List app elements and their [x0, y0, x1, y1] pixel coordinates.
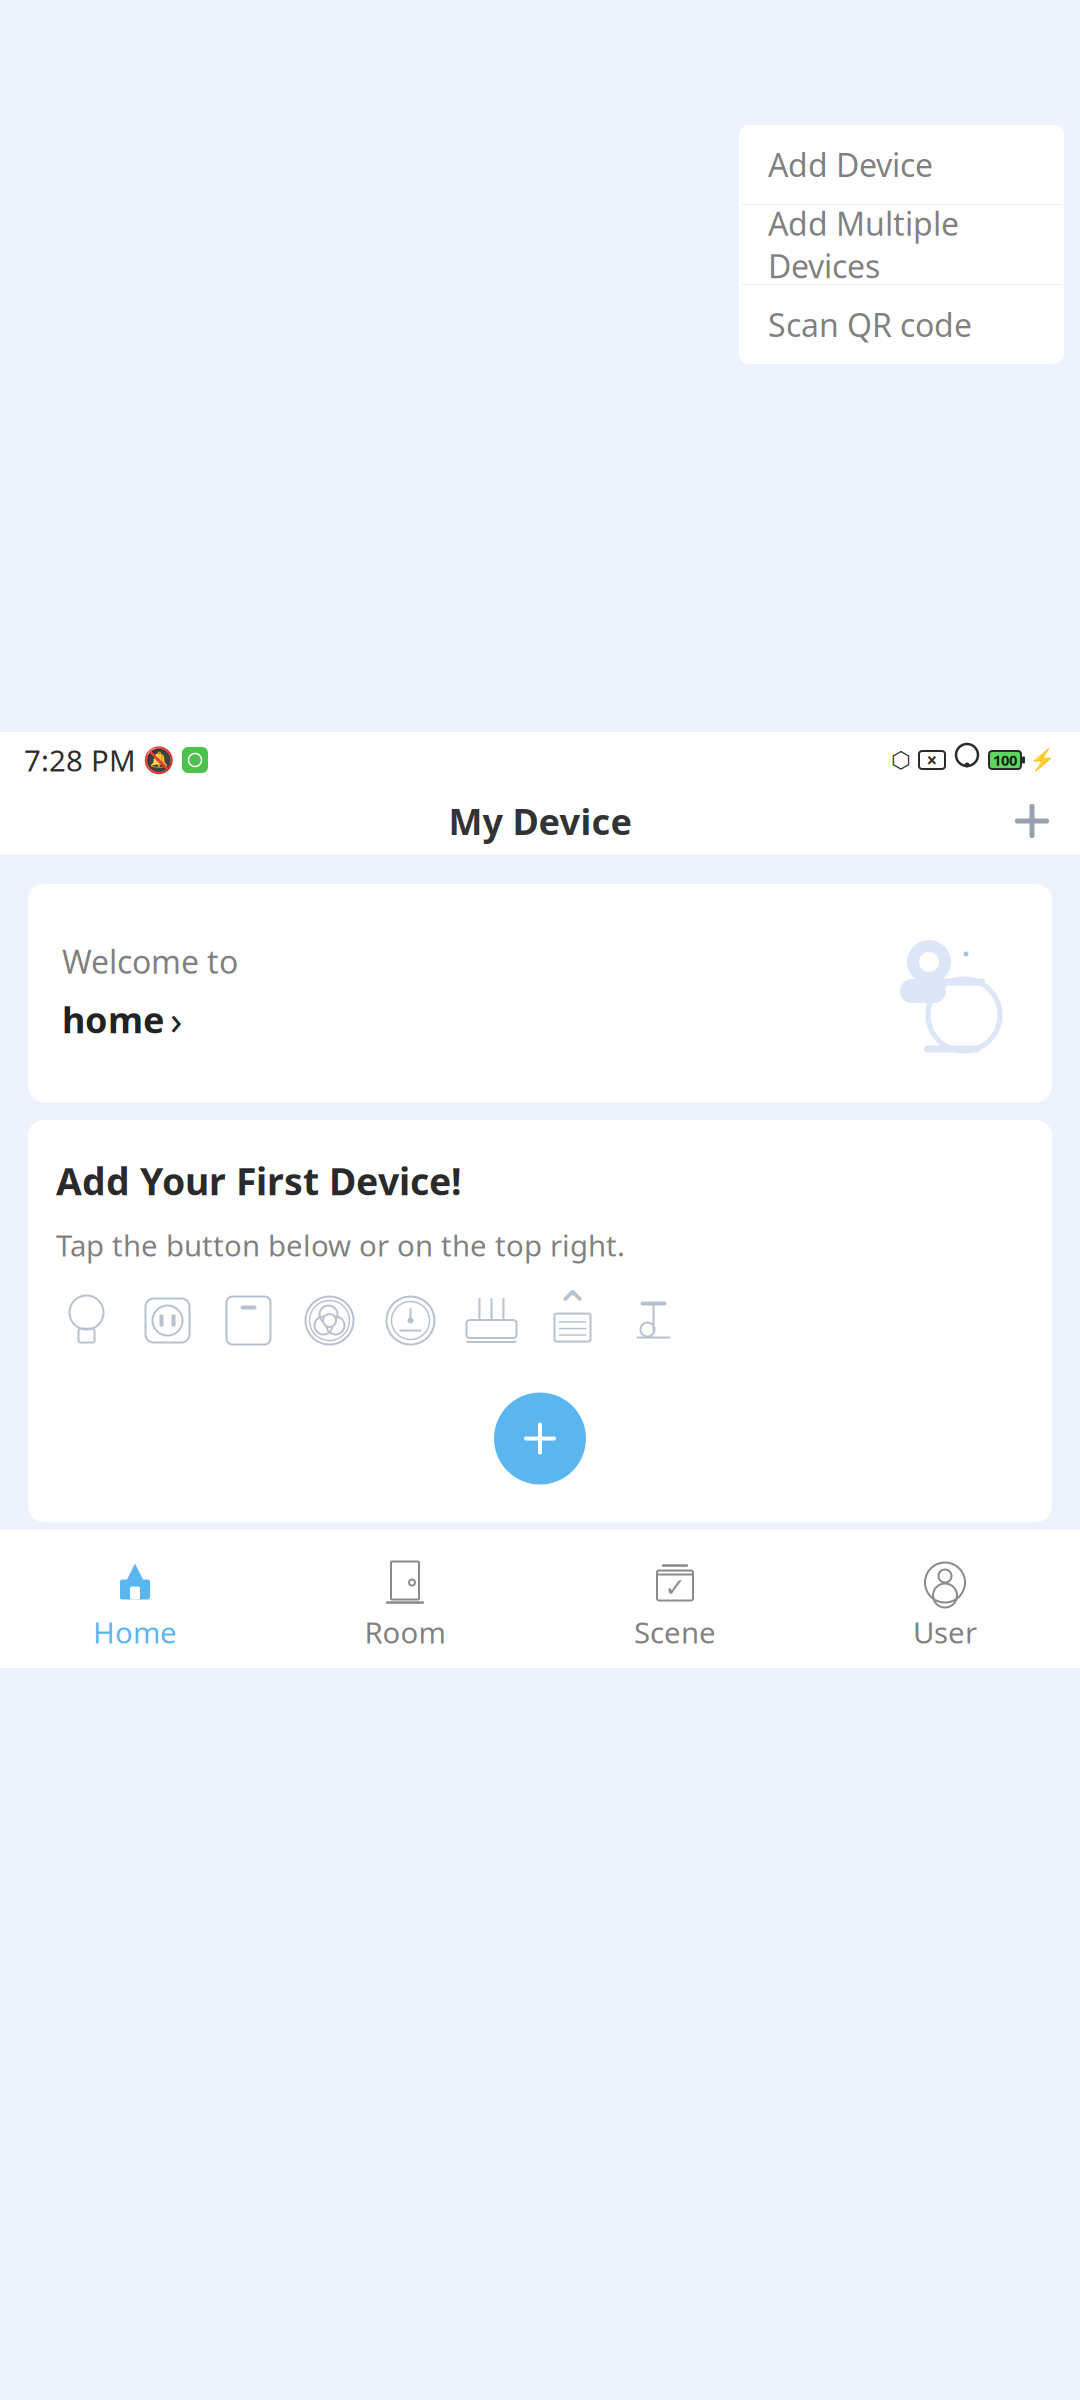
staticText: ⚡ — [1029, 748, 1056, 772]
button[interactable]: Add device — [494, 1392, 586, 1484]
button[interactable]: Room — [270, 1530, 540, 1668]
staticText: Add Device — [768, 143, 933, 186]
button[interactable]: Add — [1004, 793, 1060, 849]
button[interactable]: Welcome to — [28, 884, 1052, 1102]
staticText: Tap the button below or on the top right… — [56, 1226, 625, 1265]
button[interactable]: Add Multiple Devices — [739, 205, 1064, 284]
staticText: ⌃ — [553, 1282, 591, 1333]
staticText: home — [62, 995, 164, 1043]
staticText: Add Multiple Devices — [768, 202, 959, 287]
staticText: ⬡ — [891, 747, 911, 773]
button[interactable]: ✓ — [540, 1530, 810, 1668]
staticText: 100 — [993, 750, 1017, 770]
staticText: Home — [93, 1612, 177, 1651]
button[interactable]: ▲ — [0, 1530, 270, 1668]
staticText: › — [170, 993, 182, 1046]
button[interactable]: Scan QR code — [739, 285, 1064, 364]
staticText: ▲ — [119, 1553, 150, 1598]
staticText: Scene — [634, 1612, 716, 1651]
button[interactable]: Add Device — [739, 125, 1064, 204]
staticText: 🔕 — [143, 745, 175, 774]
staticText: Scan QR code — [768, 303, 972, 346]
staticText: × — [926, 748, 937, 772]
staticText: Welcome to — [62, 940, 238, 983]
staticText: My Device — [448, 797, 631, 845]
button[interactable]: User — [810, 1530, 1080, 1668]
staticText: ✓ — [664, 1573, 685, 1602]
staticText: Room — [364, 1612, 445, 1651]
staticText: Add Your First Device! — [56, 1156, 462, 1206]
staticText: User — [913, 1612, 977, 1651]
staticText: 7:28 PM — [24, 740, 136, 779]
